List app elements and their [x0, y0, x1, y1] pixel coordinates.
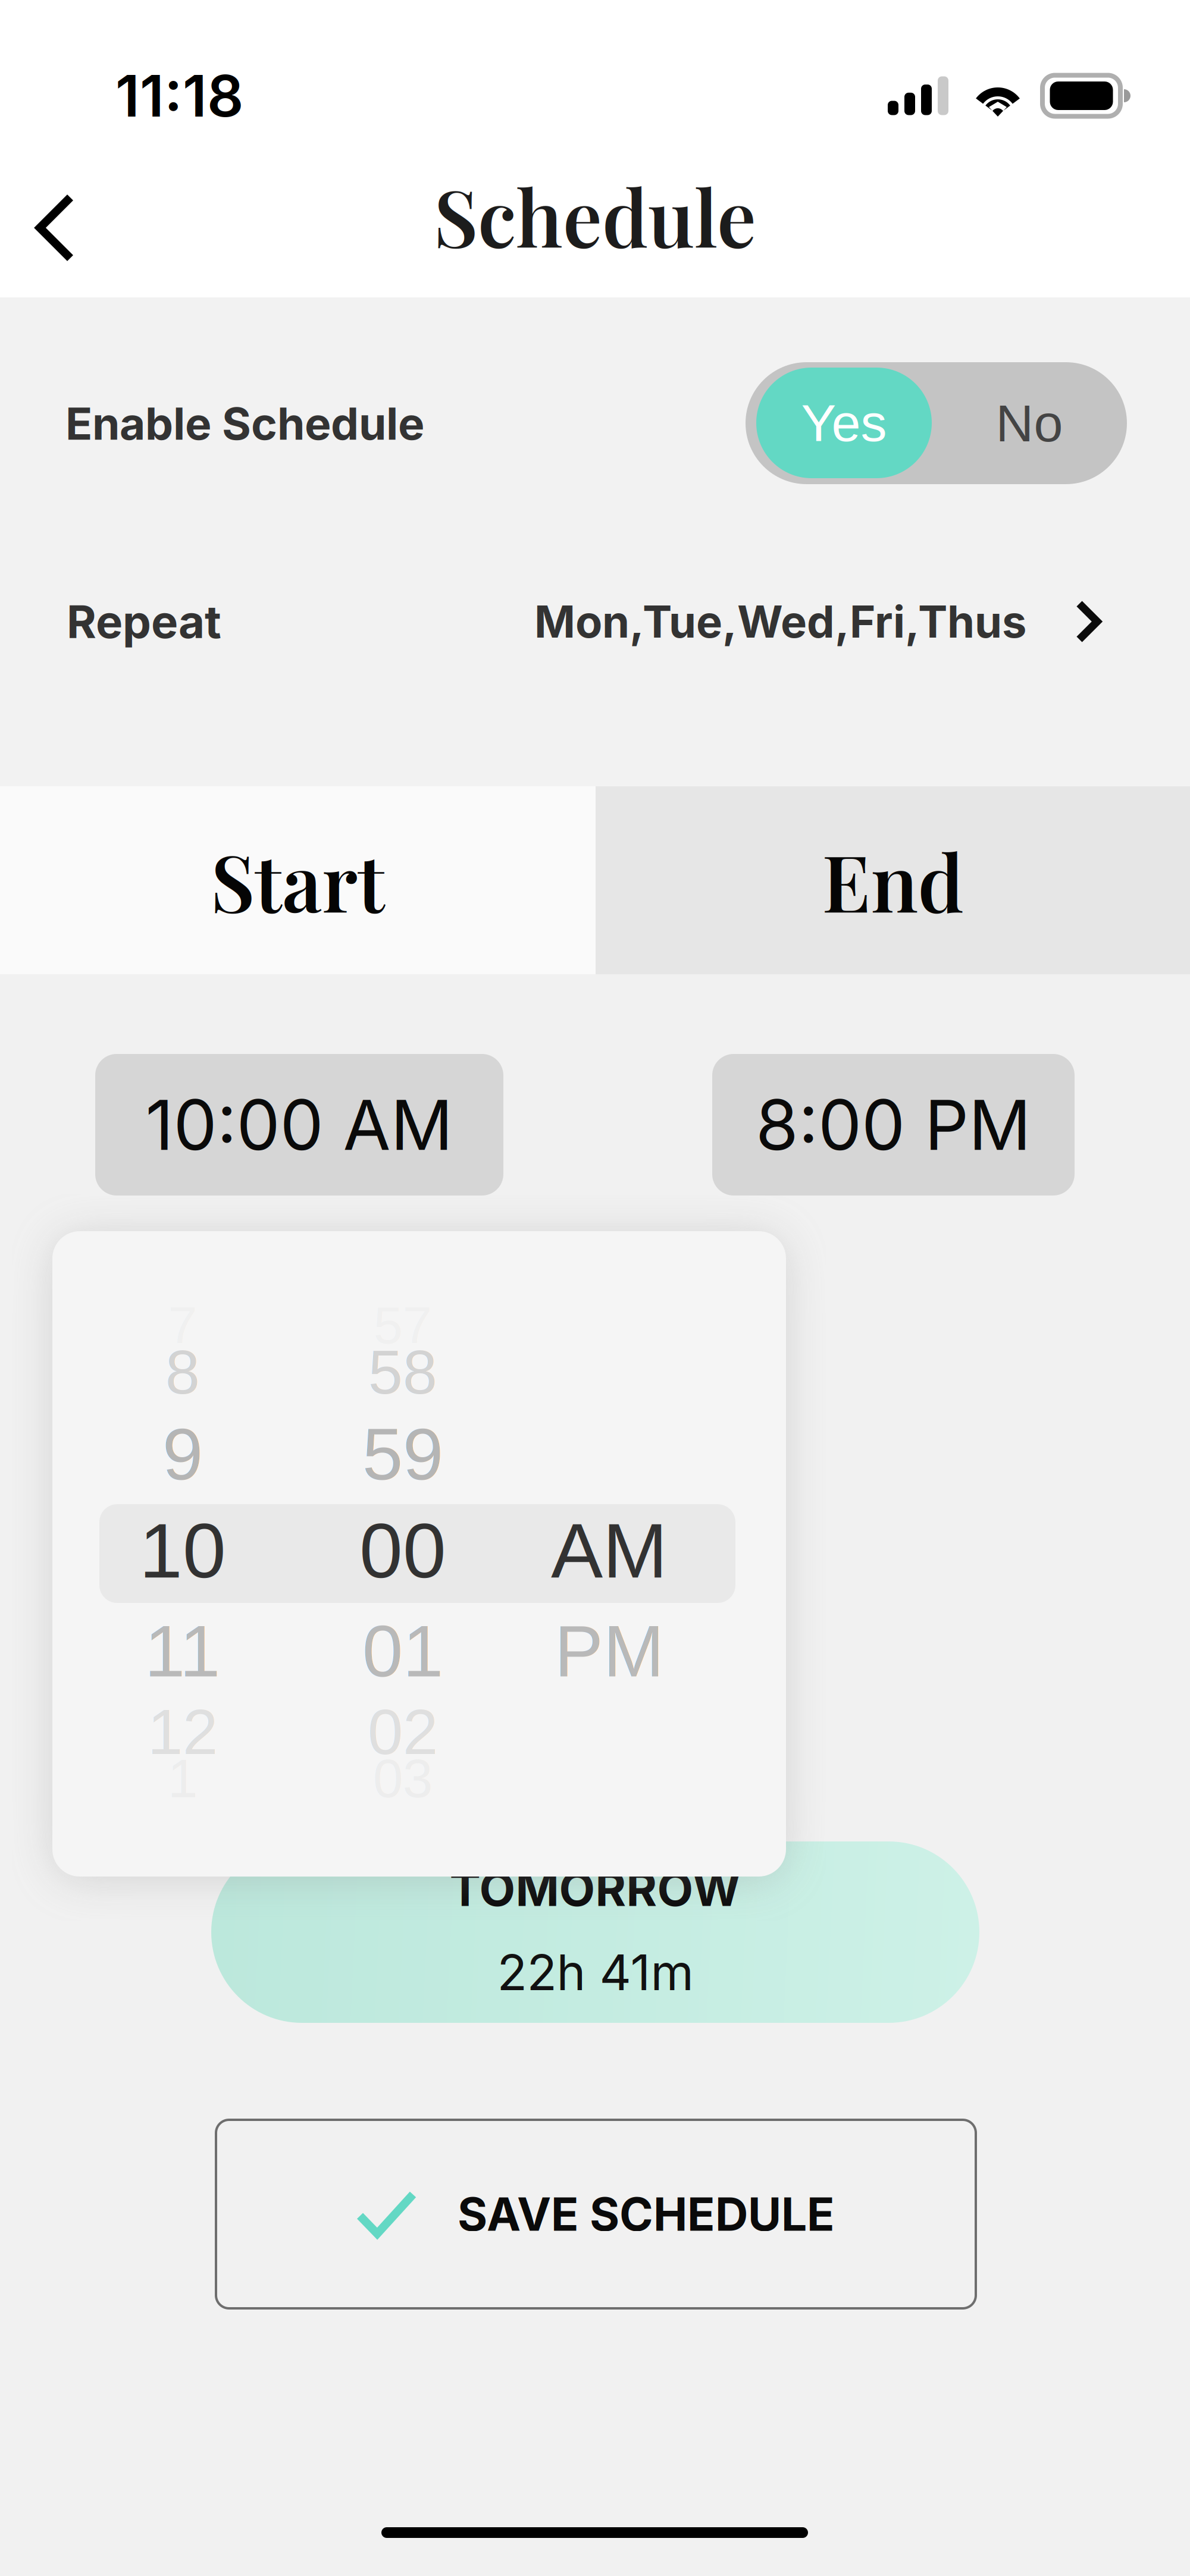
- staticText: 02: [368, 1697, 438, 1767]
- staticText: PM: [555, 1610, 664, 1692]
- staticText: 22h 41m: [497, 1943, 693, 2002]
- button[interactable]: Back: [0, 168, 111, 287]
- button[interactable]: Repeat: [0, 559, 1190, 684]
- button[interactable]: SAVE SCHEDULE: [216, 2120, 976, 2308]
- staticText: Repeat: [67, 594, 221, 649]
- staticText: 01: [362, 1610, 443, 1692]
- staticText: 58: [368, 1338, 437, 1407]
- staticText: 9: [162, 1413, 203, 1495]
- staticText: Enable Schedule: [65, 397, 424, 450]
- staticText: 11:18: [115, 61, 243, 130]
- staticText: AM: [551, 1507, 668, 1594]
- staticText: 7: [168, 1296, 197, 1354]
- staticText: SAVE SCHEDULE: [458, 2186, 835, 2242]
- staticText: Yes: [801, 394, 887, 452]
- staticText: 11: [145, 1610, 221, 1692]
- staticText: 57: [374, 1296, 432, 1354]
- staticText: 59: [362, 1413, 443, 1495]
- button[interactable]: Start: [0, 786, 596, 974]
- staticText: Mon,Tue,Wed,Fri,Thus: [534, 595, 1026, 648]
- staticText: No: [996, 394, 1063, 452]
- staticText: 12: [148, 1697, 218, 1767]
- button[interactable]: 10:00 AM: [95, 1054, 503, 1196]
- staticText: 8:00 PM: [756, 1083, 1031, 1166]
- button[interactable]: End: [596, 786, 1190, 974]
- staticText: 10:00 AM: [145, 1083, 453, 1166]
- staticText: Start: [211, 828, 385, 932]
- staticText: 03: [373, 1748, 433, 1809]
- staticText: TOMORROW: [450, 1861, 741, 1917]
- button[interactable]: No: [746, 362, 1127, 484]
- staticText: 8: [165, 1338, 200, 1407]
- staticText: 1: [168, 1748, 198, 1809]
- staticText: 00: [359, 1507, 446, 1594]
- staticText: Schedule: [434, 164, 756, 267]
- staticText: End: [822, 828, 964, 932]
- button[interactable]: 8:00 PM: [712, 1054, 1075, 1196]
- staticText: 10: [139, 1507, 226, 1594]
